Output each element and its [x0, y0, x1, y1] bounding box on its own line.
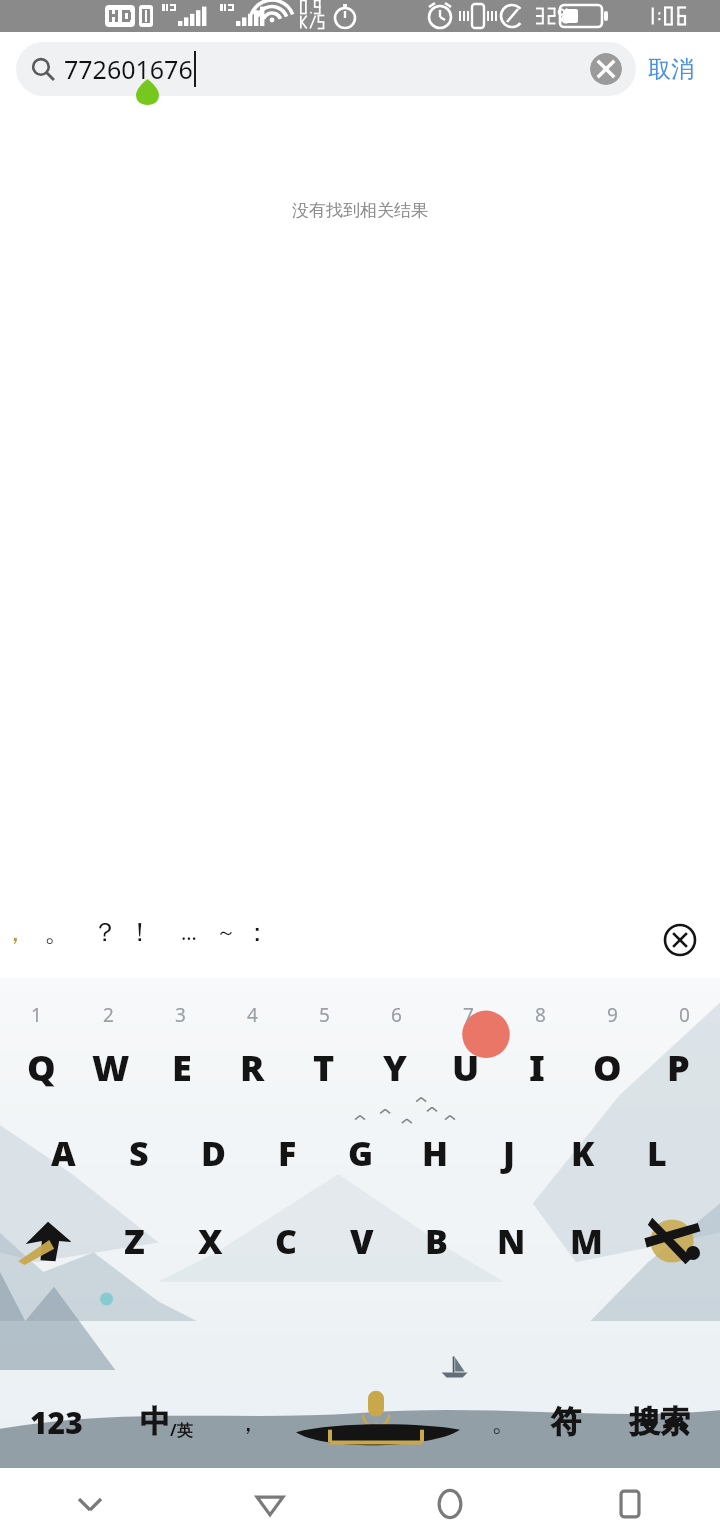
staticText: K [571, 1130, 595, 1176]
staticText: 。 [44, 916, 70, 948]
button[interactable]: Y [359, 1036, 430, 1098]
button[interactable]: B [399, 1210, 474, 1272]
staticText: 取消 [648, 55, 694, 84]
button[interactable]: V [324, 1210, 399, 1272]
button[interactable]: ！ [124, 916, 156, 948]
staticText: X [198, 1218, 223, 1264]
staticText: I [529, 1043, 545, 1092]
staticText: 1 [31, 1002, 42, 1028]
staticText: ～ [216, 920, 236, 945]
staticText: 。 [491, 1406, 517, 1439]
button[interactable]: Z [96, 1210, 172, 1272]
staticText: R [240, 1043, 265, 1092]
staticText: D [201, 1130, 226, 1176]
staticText: 7 [463, 1002, 474, 1028]
button[interactable]: D [176, 1122, 250, 1184]
staticText: B [425, 1218, 448, 1264]
button[interactable]: 。 [41, 916, 73, 948]
button[interactable]: T [288, 1036, 359, 1098]
button[interactable]: Home [360, 1468, 540, 1540]
staticText: N [497, 1218, 526, 1264]
staticText: … [181, 919, 197, 946]
button[interactable]: ， [0, 916, 31, 948]
staticText: 8 [535, 1002, 546, 1028]
button[interactable]: Q [6, 1036, 76, 1098]
staticText: 没有找到相关结果 [292, 200, 428, 221]
staticText: ！ [127, 916, 153, 948]
staticText: O [593, 1043, 622, 1092]
staticText: A [51, 1130, 76, 1176]
button[interactable]: … [173, 916, 205, 948]
button[interactable]: J [472, 1122, 546, 1184]
staticText: 中 [140, 1403, 170, 1441]
staticText: 9 [607, 1002, 618, 1028]
staticText: M [570, 1218, 603, 1264]
staticText: 2 [103, 1002, 114, 1028]
button[interactable]: Back [180, 1468, 360, 1540]
button[interactable]: ， [220, 1386, 276, 1458]
button[interactable]: N [474, 1210, 549, 1272]
button[interactable]: M [549, 1210, 624, 1272]
button[interactable]: L [620, 1122, 694, 1184]
staticText: 6 [391, 1002, 402, 1028]
button[interactable]: 符 [532, 1386, 600, 1458]
button[interactable]: W [76, 1036, 146, 1098]
staticText: E [172, 1043, 192, 1092]
button[interactable]: Backspace [624, 1210, 720, 1272]
button[interactable]: P [643, 1036, 714, 1098]
staticText: /英 [170, 1419, 193, 1441]
staticText: ， [2, 916, 28, 948]
staticText: 搜索 [630, 1403, 690, 1441]
staticText: 5 [319, 1002, 330, 1028]
button[interactable]: 772601676 [16, 42, 636, 96]
button[interactable]: ～ [210, 916, 242, 948]
staticText: Y [383, 1043, 407, 1092]
staticText: ， [235, 1406, 261, 1439]
button[interactable]: O [572, 1036, 643, 1098]
button[interactable]: Recent apps [540, 1468, 720, 1540]
staticText: U [452, 1043, 480, 1092]
staticText: F [278, 1130, 297, 1176]
staticText: C [275, 1218, 298, 1264]
button[interactable]: A [26, 1122, 101, 1184]
button[interactable]: H [398, 1122, 472, 1184]
staticText: 772601676 [64, 52, 193, 86]
button[interactable]: S [101, 1122, 176, 1184]
staticText: Q [27, 1043, 56, 1092]
staticText: 符 [551, 1403, 581, 1441]
staticText: L [647, 1130, 667, 1176]
staticText: ？ [92, 916, 118, 948]
button[interactable]: Space [276, 1386, 476, 1458]
button[interactable]: K [546, 1122, 620, 1184]
button[interactable]: Shift [0, 1210, 96, 1272]
staticText: P [667, 1043, 690, 1092]
button[interactable]: 搜索 [600, 1386, 720, 1458]
button[interactable]: C [248, 1210, 324, 1272]
button[interactable]: 中 [112, 1386, 220, 1458]
button[interactable]: E [146, 1036, 217, 1098]
staticText: Z [124, 1218, 145, 1264]
button[interactable]: Clear text [590, 53, 622, 85]
staticText: 123 [30, 1402, 83, 1443]
button[interactable]: 123 [0, 1386, 112, 1458]
staticText: G [348, 1130, 374, 1176]
staticText: S [129, 1130, 149, 1176]
staticText: ： [244, 916, 270, 948]
button[interactable]: I [501, 1036, 572, 1098]
staticText: 3 [175, 1002, 186, 1028]
button[interactable]: 。 [476, 1386, 532, 1458]
button[interactable]: Close toolbar [662, 922, 698, 958]
button[interactable]: ？ [89, 916, 121, 948]
button[interactable]: 取消 [636, 47, 706, 92]
staticText: 0 [679, 1002, 690, 1028]
button[interactable]: Hide keyboard [0, 1468, 180, 1540]
button[interactable]: R [217, 1036, 288, 1098]
button[interactable]: F [250, 1122, 324, 1184]
button[interactable]: ： [241, 916, 273, 948]
button[interactable]: G [324, 1122, 398, 1184]
button[interactable]: X [172, 1210, 248, 1272]
staticText: W [92, 1043, 130, 1092]
staticText: V [350, 1218, 374, 1264]
staticText: 4 [247, 1002, 258, 1028]
button[interactable]: U [430, 1036, 501, 1098]
